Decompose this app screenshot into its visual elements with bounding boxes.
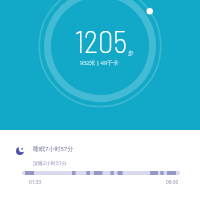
staticText: 09:30 (166, 179, 179, 186)
staticText: 01:33 (29, 179, 42, 186)
staticText: 1205 (75, 22, 127, 59)
button[interactable] (22, 171, 180, 175)
other: Sleep (16, 147, 24, 155)
staticText: 步 (128, 50, 134, 57)
staticText: 952米 | 49千卡 (80, 59, 119, 67)
staticText: 睡眠7小时57分 (33, 145, 74, 153)
staticText: 深睡2小时31分 (33, 160, 67, 167)
